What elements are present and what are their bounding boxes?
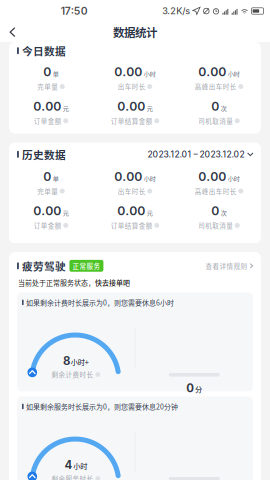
staticText: 2023.12.01 – 2023.12.02 [147, 149, 244, 159]
staticText: 0.00 [198, 169, 226, 184]
staticText: 0 [43, 64, 51, 79]
staticText: 当前处于正常服务状态，快去接单吧 [18, 278, 130, 287]
staticText: 查看详情规则 [205, 261, 247, 271]
staticText: 今日数据 [22, 43, 66, 58]
button[interactable]: 2023.12.01 – 2023.12.02 [147, 147, 261, 161]
staticText: 高峰出车时长 [195, 186, 237, 196]
staticText: 小时 [73, 461, 87, 471]
staticText: 0 [211, 99, 219, 114]
staticText: 次 [221, 208, 227, 217]
button[interactable]: 查看详情规则 [205, 259, 261, 273]
staticText: 高峰出车时长 [195, 82, 237, 91]
staticText: 如果剩余计费时长展示为0，则您需要休息6小时 [26, 297, 174, 307]
staticText: 如果剩余服务时长展示为0，则您需要休息20分钟 [26, 401, 178, 411]
staticText: 0.00 [114, 64, 142, 79]
staticText: 出车时长 [118, 186, 146, 196]
staticText: 单 [53, 69, 59, 78]
staticText: 完单量 [37, 186, 58, 196]
staticText: 元 [63, 208, 69, 217]
staticText: 司机取消量 [198, 116, 233, 126]
staticText: 历史数据 [22, 147, 66, 162]
staticText: 分 [195, 384, 202, 394]
staticText: 0.00 [33, 203, 61, 218]
staticText: 元 [147, 103, 153, 112]
staticText: 4 [64, 458, 72, 472]
staticText: 订单结算金额 [111, 116, 153, 126]
staticText: 0.00 [33, 99, 61, 114]
staticText: 8 [63, 354, 70, 368]
staticText: 小时 [144, 69, 156, 78]
staticText: 出车时长 [118, 82, 146, 91]
staticText: 订单金额 [34, 221, 62, 230]
staticText: 订单结算金额 [111, 221, 153, 230]
staticText: 剩余服务时长 [51, 474, 93, 480]
staticText: 完单量 [37, 82, 58, 91]
staticText: 0.00 [117, 99, 145, 114]
staticText: 司机取消量 [198, 221, 233, 230]
staticText: 0.00 [114, 169, 142, 184]
button[interactable]: Back [0, 22, 25, 41]
staticText: 连续休息时长 [170, 397, 212, 407]
staticText: 0.00 [117, 203, 145, 218]
staticText: 小时+ [71, 357, 89, 367]
staticText: 0.00 [198, 64, 226, 79]
staticText: 0 [211, 203, 219, 218]
staticText: 元 [147, 208, 153, 217]
staticText: 0 [186, 381, 194, 395]
staticText: 17:50 [61, 5, 88, 17]
staticText: 元 [63, 103, 69, 112]
staticText: 正常服务 [72, 261, 100, 271]
staticText: 小时 [144, 174, 156, 183]
staticText: 0 [43, 169, 51, 184]
staticText: 小时 [228, 174, 240, 183]
staticText: 次 [221, 103, 227, 112]
staticText: 数据统计 [113, 24, 157, 40]
staticText: 订单金额 [34, 116, 62, 126]
staticText: 疲劳驾驶 [22, 258, 66, 273]
staticText: 剩余计费时长 [51, 370, 93, 379]
staticText: 3.2K/s [162, 5, 190, 16]
staticText: 单 [53, 174, 59, 183]
staticText: 小时 [228, 69, 240, 78]
